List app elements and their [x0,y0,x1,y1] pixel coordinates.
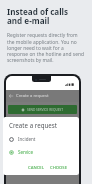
staticText: Incident [18,136,36,142]
button[interactable]: CHOOSE [48,163,69,173]
button[interactable]: SEND SERVICE REQUEST [8,105,77,114]
other: Back [8,93,14,99]
staticText: Create a request [16,93,49,99]
button[interactable]: Incident [3,136,79,142]
staticText: Service [18,149,34,155]
staticText: CANCEL [28,165,44,171]
staticText: Instead of calls and e-mail [7,6,69,27]
button[interactable]: Back [8,93,14,99]
staticText: CHOOSE [50,165,67,171]
button[interactable]: Service [3,149,79,155]
staticText: SEND SERVICE REQUEST [27,108,64,112]
staticText: Register requests directly from the mobi… [7,32,86,63]
button[interactable]: CANCEL [26,163,46,173]
staticText: Create a request [9,121,57,129]
